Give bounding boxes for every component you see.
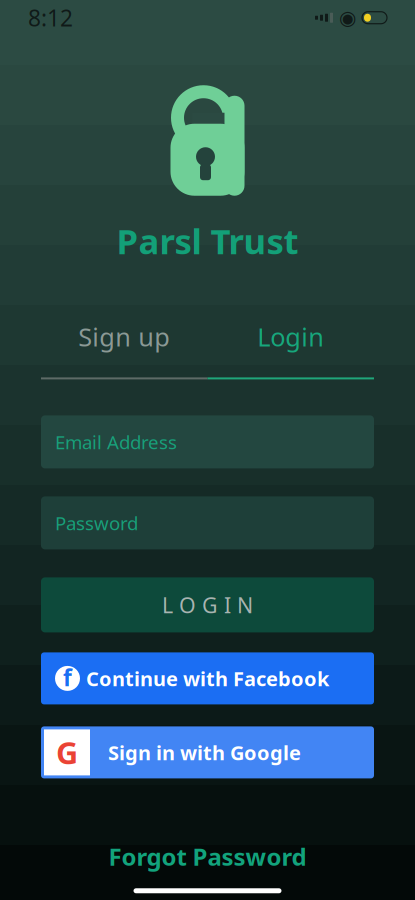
button[interactable]: f	[41, 652, 374, 704]
staticText: 8:12	[28, 3, 73, 33]
staticText: Password	[55, 510, 138, 535]
staticText: f	[63, 662, 72, 692]
button[interactable]: G	[41, 726, 374, 778]
staticText: Sign in with Google	[108, 739, 301, 766]
button[interactable]: Forgot Password	[88, 832, 326, 880]
staticText: Login	[257, 320, 324, 353]
button[interactable]: L O G I N	[41, 577, 374, 632]
staticText: Email Address	[55, 429, 177, 454]
button[interactable]: Password	[41, 496, 374, 549]
button[interactable]: Email Address	[41, 415, 374, 468]
staticText: Forgot Password	[108, 840, 306, 872]
staticText: Parsl Trust	[116, 218, 298, 264]
staticText: ◉	[339, 6, 356, 29]
staticText: Continue with Facebook	[86, 665, 329, 692]
button[interactable]: Login	[207, 308, 374, 365]
staticText: Sign up	[78, 320, 170, 353]
staticText: G	[56, 732, 78, 773]
button[interactable]: Sign up	[41, 308, 207, 365]
staticText: L O G I N	[162, 591, 253, 619]
